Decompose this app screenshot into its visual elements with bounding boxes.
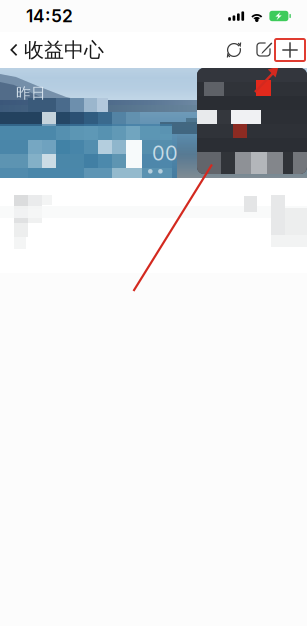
staticText: 收益中心 (24, 37, 104, 63)
staticText: 昨日 (16, 84, 46, 102)
staticText: 14:52 (26, 5, 73, 26)
button[interactable]: 收益中心 (0, 32, 112, 68)
staticText: 00 (152, 141, 178, 165)
button[interactable]: Add (274, 35, 306, 65)
button[interactable]: Refresh (215, 35, 242, 65)
button[interactable]: Compose (245, 35, 272, 65)
